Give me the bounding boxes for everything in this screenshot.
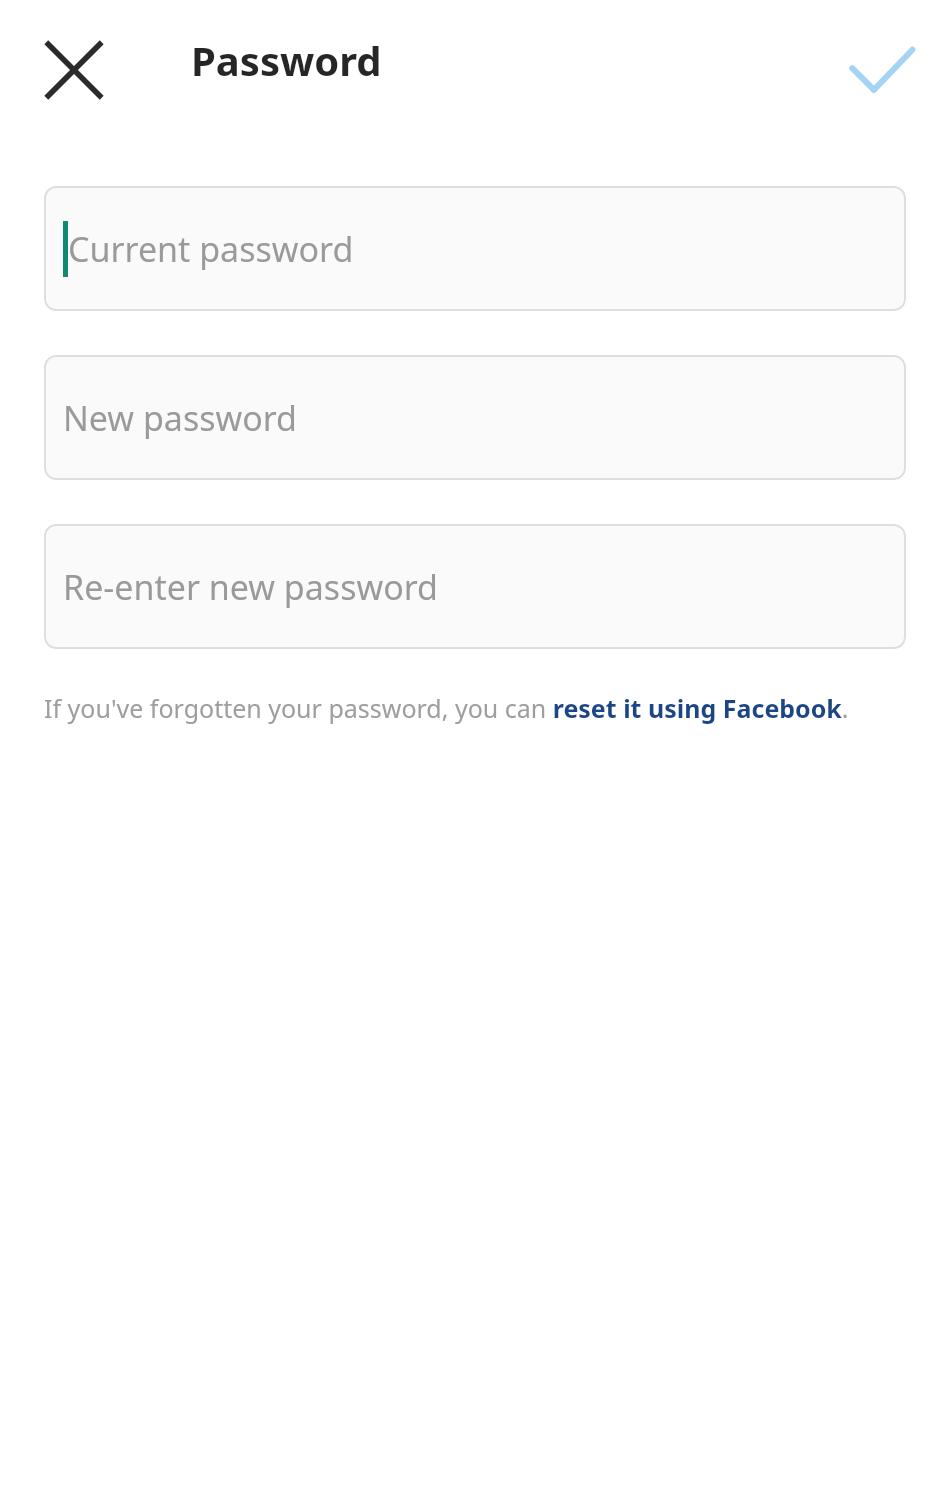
staticText: New password (63, 395, 298, 441)
staticText: Current password (68, 226, 354, 272)
staticText: If you've forgotten your password, you c… (44, 691, 849, 725)
staticText: Password (191, 33, 382, 87)
button[interactable]: New password (44, 355, 906, 480)
button[interactable]: Close (28, 24, 120, 116)
button[interactable]: Current password (44, 186, 906, 311)
button[interactable]: Confirm (834, 22, 930, 118)
button[interactable]: Re-enter new password (44, 524, 906, 649)
button[interactable]: If you've forgotten your password, you c… (44, 691, 849, 725)
staticText: Re-enter new password (63, 564, 438, 610)
